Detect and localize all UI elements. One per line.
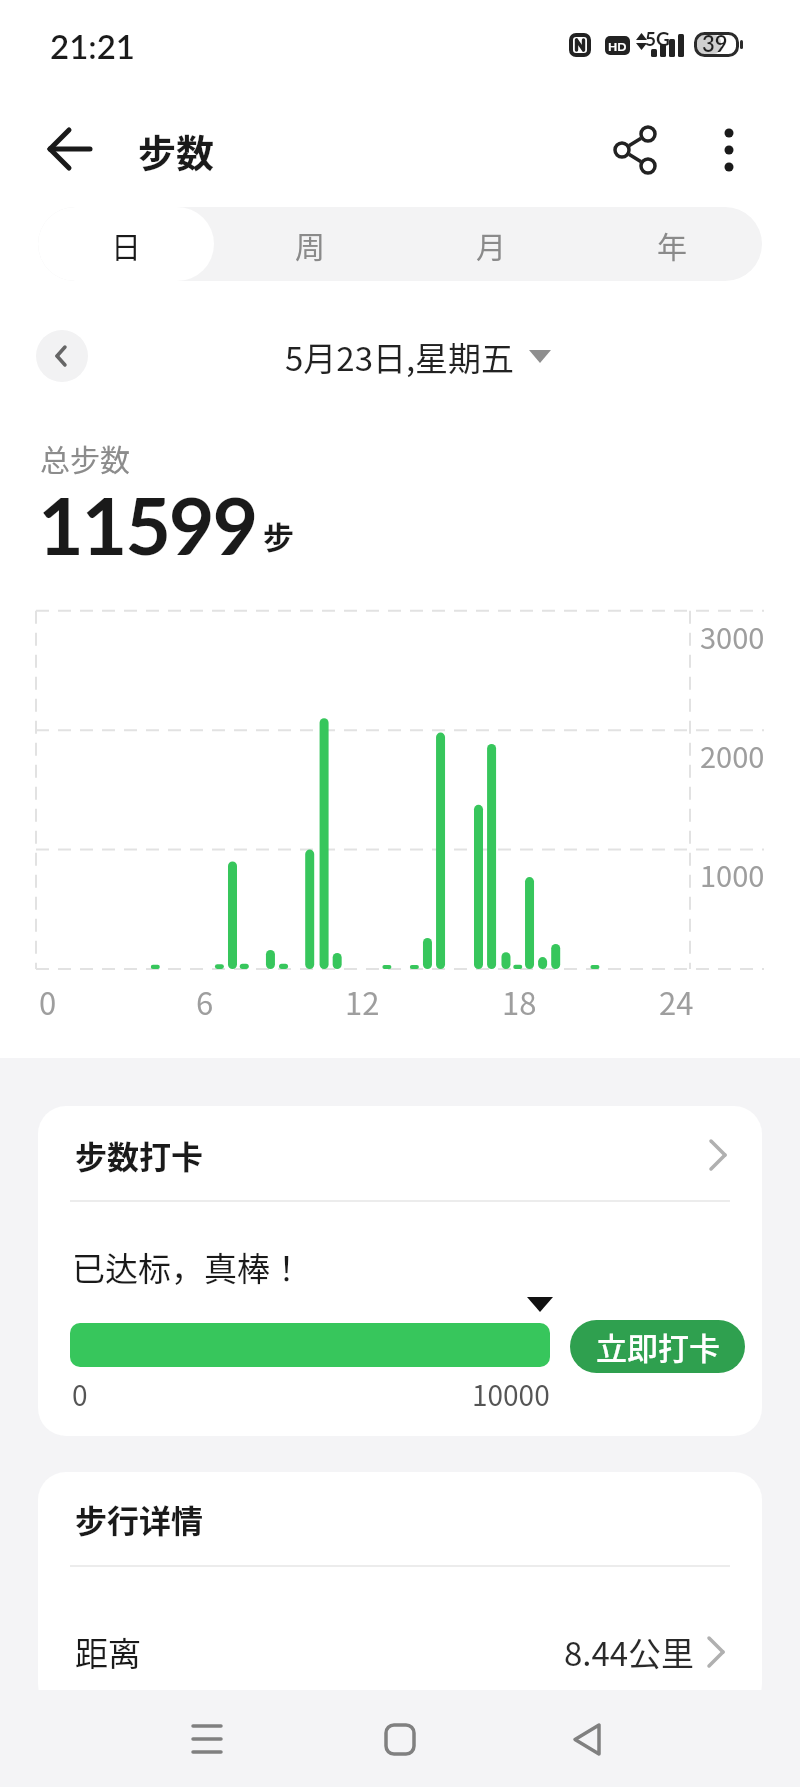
staticText: 2000 xyxy=(700,734,765,776)
button[interactable] xyxy=(556,1707,620,1771)
staticText: 年 xyxy=(657,223,687,266)
staticText: 6 xyxy=(196,979,214,1024)
button[interactable]: 日 xyxy=(38,207,214,281)
button[interactable] xyxy=(38,1604,762,1690)
button[interactable]: 立即打卡 xyxy=(570,1320,745,1373)
staticText: 立即打卡 xyxy=(596,1324,720,1369)
staticText: 12 xyxy=(345,979,380,1024)
staticText: 1000 xyxy=(700,853,765,895)
button[interactable] xyxy=(38,1106,762,1202)
staticText: 5月23日,星期五 xyxy=(285,333,515,381)
staticText: 39 xyxy=(702,30,728,56)
button[interactable] xyxy=(520,340,560,374)
staticText: 总步数 xyxy=(40,436,130,479)
button[interactable] xyxy=(175,1707,239,1771)
staticText: 周 xyxy=(295,223,325,266)
staticText: 0 xyxy=(72,1374,88,1415)
staticText: 日 xyxy=(111,223,141,266)
staticText: 24 xyxy=(659,979,694,1024)
button[interactable] xyxy=(368,1707,432,1771)
staticText: 5G xyxy=(645,27,670,50)
staticText: 3000 xyxy=(700,615,765,657)
button[interactable] xyxy=(36,330,88,382)
staticText: 距离 xyxy=(75,1628,141,1676)
staticText: 10000 xyxy=(472,1374,550,1415)
button[interactable]: 周 xyxy=(219,207,400,281)
staticText: 步 xyxy=(263,513,294,558)
staticText: 8.44公里 xyxy=(564,1628,695,1676)
staticText: 已达标，真棒！ xyxy=(72,1243,303,1291)
staticText: 18 xyxy=(502,979,537,1024)
staticText: 步行详情 xyxy=(75,1496,204,1542)
button[interactable] xyxy=(36,118,100,182)
staticText: 月 xyxy=(476,223,506,266)
staticText: 21:21 xyxy=(50,26,135,66)
button[interactable]: 年 xyxy=(581,207,762,281)
staticText: 11599 xyxy=(38,477,257,572)
staticText: 0 xyxy=(39,979,57,1024)
button[interactable] xyxy=(608,122,664,178)
button[interactable] xyxy=(702,122,758,178)
button[interactable]: 月 xyxy=(400,207,581,281)
staticText: 步数打卡 xyxy=(75,1132,204,1178)
staticText: HD xyxy=(608,39,627,53)
staticText: 步数 xyxy=(138,123,215,178)
